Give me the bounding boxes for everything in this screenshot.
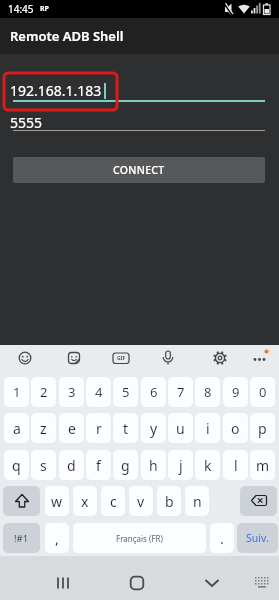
button[interactable]: .: [210, 523, 234, 553]
button[interactable]: [160, 349, 176, 367]
button[interactable]: j: [168, 450, 193, 480]
staticText: m: [256, 456, 270, 475]
button[interactable]: 8: [195, 377, 220, 407]
staticText: j: [179, 456, 183, 475]
button[interactable]: f: [86, 450, 111, 480]
staticText: 4: [95, 383, 103, 401]
staticText: !#1: [14, 532, 29, 545]
staticText: i: [206, 419, 210, 438]
button[interactable]: [17, 350, 33, 366]
staticText: y: [150, 419, 158, 438]
staticText: g: [121, 456, 130, 475]
button[interactable]: b: [157, 486, 181, 516]
staticText: n: [193, 492, 202, 511]
button[interactable]: e: [59, 413, 84, 443]
staticText: c: [110, 492, 117, 511]
staticText: w: [51, 492, 63, 511]
button[interactable]: v: [129, 486, 153, 516]
staticText: 6: [150, 383, 158, 401]
staticText: x: [81, 492, 89, 511]
staticText: s: [40, 456, 47, 475]
button[interactable]: [240, 486, 277, 516]
staticText: q: [12, 456, 21, 475]
button[interactable]: [126, 572, 148, 594]
button[interactable]: Remote ADB Shell: [0, 18, 279, 54]
staticText: v: [137, 492, 145, 511]
button[interactable]: ,: [45, 523, 69, 553]
button[interactable]: 5: [113, 377, 138, 407]
staticText: 7: [177, 383, 185, 401]
staticText: 8: [204, 383, 212, 401]
staticText: d: [67, 456, 76, 475]
staticText: 3: [68, 383, 76, 401]
button[interactable]: s: [31, 450, 56, 480]
button[interactable]: l: [223, 450, 248, 480]
button[interactable]: [212, 350, 228, 366]
staticText: k: [204, 456, 212, 475]
button[interactable]: x: [73, 486, 97, 516]
button[interactable]: 192.168.1.183: [10, 81, 102, 99]
button[interactable]: GIF: [112, 350, 130, 366]
staticText: e: [68, 419, 76, 438]
staticText: p: [258, 419, 267, 438]
button[interactable]: r: [86, 413, 111, 443]
button[interactable]: o: [223, 413, 248, 443]
button[interactable]: m: [250, 450, 275, 480]
button[interactable]: [52, 572, 74, 594]
staticText: r: [96, 419, 102, 438]
button[interactable]: Suiv.: [237, 523, 278, 553]
staticText: t: [123, 419, 129, 438]
button[interactable]: [253, 574, 271, 590]
staticText: a: [13, 419, 21, 438]
staticText: z: [40, 419, 47, 438]
staticText: GIF: [117, 355, 126, 362]
staticText: 1: [13, 383, 21, 401]
button[interactable]: t: [113, 413, 138, 443]
button[interactable]: [201, 572, 223, 594]
staticText: .: [220, 529, 224, 548]
button[interactable]: i: [195, 413, 220, 443]
button[interactable]: [3, 486, 40, 516]
staticText: l: [234, 456, 238, 475]
button[interactable]: q: [4, 450, 29, 480]
button[interactable]: Français (FR): [73, 523, 206, 553]
button[interactable]: z: [31, 413, 56, 443]
button[interactable]: 0: [250, 377, 275, 407]
button[interactable]: h: [141, 450, 166, 480]
button[interactable]: c: [101, 486, 125, 516]
button[interactable]: 7: [168, 377, 193, 407]
staticText: 5555: [10, 113, 43, 131]
button[interactable]: !#1: [3, 523, 40, 553]
staticText: 14:45: [8, 2, 34, 16]
button[interactable]: u: [168, 413, 193, 443]
staticText: ,: [55, 529, 59, 548]
button[interactable]: y: [141, 413, 166, 443]
button[interactable]: w: [45, 486, 69, 516]
staticText: 2: [40, 383, 48, 401]
staticText: h: [149, 456, 158, 475]
button[interactable]: 2: [31, 377, 56, 407]
staticText: RP: [40, 4, 49, 14]
button[interactable]: p: [250, 413, 275, 443]
staticText: 5: [122, 383, 130, 401]
staticText: 9: [232, 383, 240, 401]
button[interactable]: 6: [141, 377, 166, 407]
button[interactable]: g: [113, 450, 138, 480]
button[interactable]: 5555: [10, 113, 43, 131]
staticText: Français (FR): [116, 533, 163, 544]
staticText: 0: [259, 383, 267, 401]
button[interactable]: 3: [59, 377, 84, 407]
button[interactable]: [252, 350, 272, 366]
staticText: u: [176, 419, 185, 438]
button[interactable]: n: [185, 486, 209, 516]
button[interactable]: [66, 350, 82, 366]
button[interactable]: 1: [4, 377, 29, 407]
button[interactable]: CONNECT: [13, 157, 265, 183]
button[interactable]: k: [195, 450, 220, 480]
staticText: f: [96, 456, 101, 475]
staticText: o: [231, 419, 240, 438]
button[interactable]: a: [4, 413, 29, 443]
button[interactable]: 9: [223, 377, 248, 407]
button[interactable]: 4: [86, 377, 111, 407]
button[interactable]: d: [59, 450, 84, 480]
